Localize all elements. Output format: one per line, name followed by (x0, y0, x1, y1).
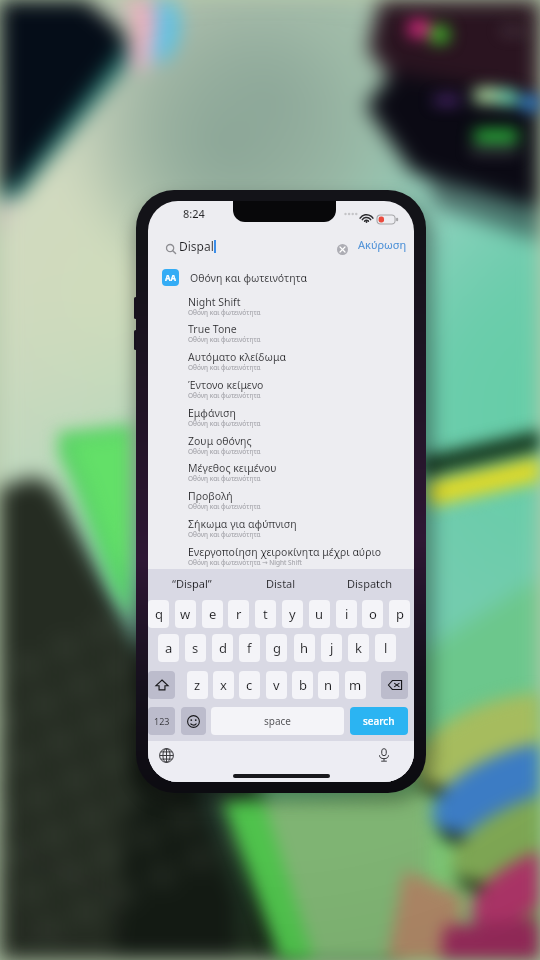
staticText: Οθόνη και φωτεινότητα (188, 391, 261, 400)
staticText: Οθόνη και φωτεινότητα (188, 419, 261, 428)
staticText: t (263, 605, 268, 623)
staticText: w (180, 605, 191, 623)
button[interactable]: a (158, 634, 179, 662)
staticText: e (209, 605, 217, 623)
button[interactable]: Εμφάνιση (188, 406, 414, 433)
staticText: Προβολή (188, 489, 233, 503)
button[interactable]: t (255, 600, 276, 628)
staticText: q (155, 605, 163, 623)
button[interactable]: j (321, 634, 342, 662)
button[interactable]: Emoji (181, 707, 206, 735)
staticText: Αυτόματο κλείδωμα (188, 350, 286, 364)
button[interactable]: u (309, 600, 330, 628)
button[interactable]: l (375, 634, 396, 662)
staticText: n (324, 676, 333, 694)
staticText: Οθόνη και φωτεινότητα (188, 308, 261, 317)
button[interactable]: i (336, 600, 357, 628)
button[interactable]: Clear text (337, 244, 348, 255)
button[interactable]: q (148, 600, 169, 628)
staticText: Night Shift (188, 295, 241, 309)
button[interactable]: Distal (236, 569, 325, 597)
button[interactable]: space (211, 707, 344, 735)
staticText: Ζουμ οθόνης (188, 434, 252, 448)
staticText: Ακύρωση (358, 237, 407, 252)
button[interactable]: “Dispal” (148, 569, 236, 597)
button[interactable]: b (292, 671, 313, 699)
staticText: Distal (266, 576, 296, 591)
button[interactable]: Night Shift (188, 295, 414, 322)
staticText: p (396, 605, 404, 623)
button[interactable]: p (389, 600, 410, 628)
button[interactable]: w (175, 600, 196, 628)
staticText: g (273, 639, 281, 657)
button[interactable]: Αυτόματο κλείδωμα (188, 350, 414, 377)
staticText: b (299, 676, 307, 694)
staticText: Οθόνη και φωτεινότητα (188, 530, 261, 539)
staticText: Εμφάνιση (188, 406, 236, 420)
staticText: Οθόνη και φωτεινότητα (190, 271, 308, 285)
button[interactable]: Προβολή (188, 489, 414, 516)
staticText: f (247, 639, 252, 657)
staticText: a (165, 639, 173, 657)
staticText: Οθόνη και φωτεινότητα (188, 474, 261, 483)
button[interactable]: Dictate (374, 745, 394, 765)
button[interactable]: z (187, 671, 208, 699)
button[interactable]: e (202, 600, 223, 628)
button[interactable]: True Tone (188, 322, 414, 349)
button[interactable]: f (239, 634, 260, 662)
staticText: Dispatch (347, 576, 393, 591)
button[interactable]: c (239, 671, 260, 699)
button[interactable]: Έντονο κείμενο (188, 378, 414, 405)
staticText: 123 (154, 715, 170, 727)
staticText: o (369, 605, 377, 623)
staticText: Οθόνη και φωτεινότητα (188, 447, 261, 456)
button[interactable]: Shift (148, 671, 175, 699)
button[interactable]: s (185, 634, 206, 662)
staticText: Ενεργοποίηση χειροκίνητα μέχρι αύριο (188, 545, 382, 559)
button[interactable]: y (282, 600, 303, 628)
staticText: s (192, 639, 199, 657)
button[interactable]: h (294, 634, 315, 662)
button[interactable]: x (213, 671, 234, 699)
staticText: Σήκωμα για αφύπνιση (188, 517, 297, 531)
button[interactable]: o (362, 600, 383, 628)
staticText: k (355, 639, 362, 657)
staticText: m (349, 676, 362, 694)
staticText: x (220, 676, 227, 694)
button[interactable]: 123 (148, 707, 175, 735)
staticText: Οθόνη και φωτεινότητα → Night Shift (188, 558, 302, 567)
staticText: z (194, 676, 201, 694)
staticText: j (330, 639, 334, 657)
button[interactable]: g (266, 634, 287, 662)
button[interactable]: Ενεργοποίηση χειροκίνητα μέχρι αύριο (188, 545, 414, 572)
button[interactable]: v (266, 671, 287, 699)
staticText: Dispal (179, 238, 214, 254)
button[interactable]: Σήκωμα για αφύπνιση (188, 517, 414, 544)
staticText: h (300, 639, 309, 657)
button[interactable]: Backspace (381, 671, 408, 699)
staticText: y (289, 605, 296, 623)
button[interactable]: AA (162, 267, 414, 288)
button[interactable]: d (212, 634, 233, 662)
staticText: u (315, 605, 324, 623)
button[interactable]: Μέγεθος κειμένου (188, 461, 414, 488)
staticText: space (264, 714, 291, 728)
button[interactable]: search (350, 707, 408, 735)
staticText: Οθόνη και φωτεινότητα (188, 363, 261, 372)
button[interactable]: Ζουμ οθόνης (188, 434, 414, 461)
button[interactable]: m (345, 671, 366, 699)
button[interactable]: n (318, 671, 339, 699)
staticText: “Dispal” (172, 576, 212, 591)
button[interactable]: Change keyboard (156, 745, 176, 765)
staticText: 8:24 (183, 206, 205, 221)
staticText: r (236, 605, 242, 623)
staticText: c (246, 676, 253, 694)
button[interactable]: r (228, 600, 249, 628)
staticText: Μέγεθος κειμένου (188, 461, 277, 475)
button[interactable]: Dispatch (325, 569, 414, 597)
staticText: Έντονο κείμενο (188, 378, 264, 392)
button[interactable]: k (348, 634, 369, 662)
staticText: i (345, 605, 349, 623)
button[interactable]: Ακύρωση (358, 237, 407, 256)
staticText: l (384, 639, 388, 657)
